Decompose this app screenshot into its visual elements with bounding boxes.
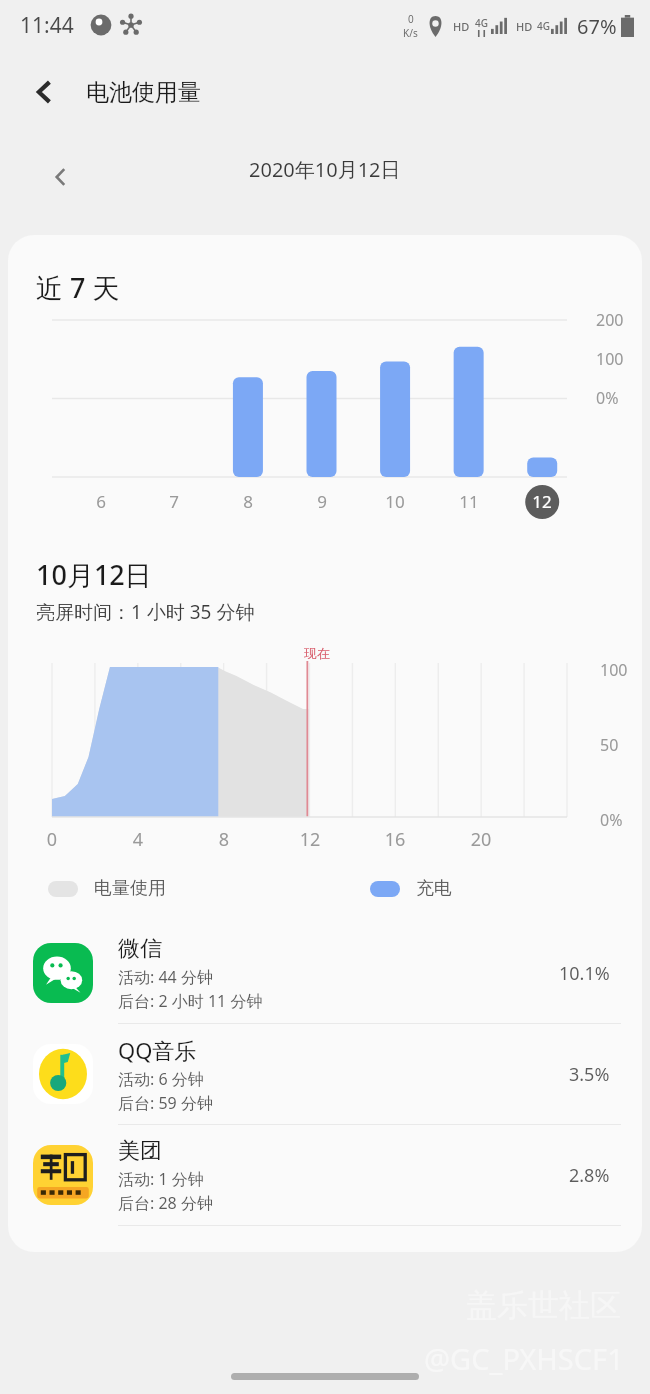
staticText: 微信 — [118, 935, 162, 963]
staticText: 4 — [124, 827, 152, 852]
staticText: 10月12日 — [36, 556, 152, 593]
staticText: K/s — [403, 26, 418, 40]
staticText: 16 — [381, 827, 409, 852]
staticText: 9 — [308, 490, 336, 513]
staticText: 8 — [210, 827, 238, 852]
staticText: 现在 — [304, 645, 330, 661]
button[interactable]: 微信 — [8, 923, 642, 1023]
staticText: HD — [453, 19, 470, 34]
staticText: 10.1% — [559, 961, 610, 986]
staticText: 100 — [600, 659, 628, 681]
staticText: 100 — [596, 348, 624, 370]
staticText: 美团 — [118, 1137, 162, 1165]
button[interactable]: QQ音乐 — [8, 1024, 642, 1124]
staticText: 活动: 6 分钟 — [118, 1068, 204, 1090]
staticText: 3.5% — [569, 1062, 610, 1087]
staticText: 10 — [381, 490, 409, 513]
staticText: 亮屏时间：1 小时 35 分钟 — [36, 599, 255, 625]
staticText: 8 — [234, 490, 262, 513]
staticText: HD — [516, 19, 533, 34]
staticText: 2.8% — [569, 1163, 610, 1188]
button[interactable]: Back — [22, 69, 68, 115]
staticText: 11:44 — [20, 11, 74, 40]
button[interactable]: 电量使用 — [48, 877, 166, 900]
staticText: 0% — [596, 387, 619, 409]
staticText: 2020年10月12日 — [249, 156, 401, 183]
staticText: 近 7 天 — [36, 269, 120, 306]
staticText: 0 — [38, 827, 66, 852]
staticText: 充电 — [416, 877, 452, 900]
staticText: 活动: 44 分钟 — [118, 966, 213, 988]
staticText: 200 — [596, 309, 624, 331]
staticText: 6 — [87, 490, 115, 513]
button[interactable]: Previous day — [36, 152, 86, 202]
staticText: 4G — [475, 16, 488, 30]
staticText: 后台: 2 小时 11 分钟 — [118, 990, 263, 1012]
staticText: 7 — [160, 490, 188, 513]
staticText: 后台: 59 分钟 — [118, 1092, 213, 1114]
staticText: 11 — [455, 490, 483, 513]
staticText: QQ音乐 — [118, 1035, 197, 1065]
staticText: 12 — [528, 490, 556, 513]
staticText: 电池使用量 — [86, 78, 201, 107]
staticText: 4G — [537, 19, 550, 33]
staticText: 0 — [408, 12, 414, 26]
staticText: 50 — [600, 734, 619, 756]
staticText: 活动: 1 分钟 — [118, 1168, 204, 1190]
staticText: 后台: 28 分钟 — [118, 1192, 213, 1214]
staticText: 20 — [467, 827, 495, 852]
staticText: 0% — [600, 809, 623, 831]
staticText: 12 — [296, 827, 324, 852]
button[interactable]: 充电 — [370, 877, 452, 900]
staticText: 67% — [577, 13, 617, 40]
staticText: 电量使用 — [94, 877, 166, 900]
button[interactable]: 美团 — [8, 1125, 642, 1225]
